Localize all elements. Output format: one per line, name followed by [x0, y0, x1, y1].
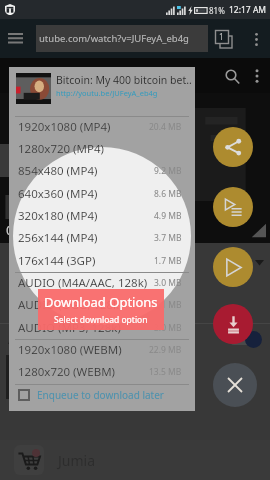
button[interactable]: Close	[213, 363, 257, 407]
button[interactable]: 1920x1080 (MP4)	[9, 116, 195, 138]
staticText: Download Options	[44, 293, 158, 311]
staticText: 854x480 (MP4)	[18, 163, 98, 179]
staticText: AUDIO (M4A/AAC, 128k)	[18, 275, 148, 291]
button[interactable]: utube.com/watch?v=JUFeyA_eb4g	[36, 25, 208, 52]
button[interactable]: More	[247, 66, 267, 86]
button[interactable]: 176x144 (3GP)	[9, 250, 195, 272]
button[interactable]: 1920x1080 (WEBM)	[9, 339, 195, 361]
button[interactable]: Search	[220, 64, 244, 88]
button[interactable]: 854x480 (MP4)	[9, 160, 195, 182]
button[interactable]: 320x180 (MP4)	[9, 205, 195, 227]
button[interactable]: 1280x720 (MP4)	[9, 138, 195, 160]
button[interactable]: AUDIO (OGG, 128k)	[9, 294, 195, 316]
staticText: 3.0 MB	[154, 322, 182, 334]
staticText: http://youtu.be/JUFeyA_eb4g	[56, 88, 158, 98]
staticText: AUDIO (OGG, 128k)	[18, 297, 123, 313]
staticText: 81%	[209, 5, 225, 16]
staticText: 0:00	[6, 221, 32, 239]
staticText: 4.9 MB	[154, 210, 182, 222]
button[interactable]: Tabs	[214, 30, 238, 50]
button[interactable]: 640x360 (MP4)	[9, 183, 195, 205]
staticText: CNBC	[88, 373, 113, 385]
staticText: 2:54	[64, 386, 80, 397]
staticText: 138,139 views	[88, 388, 147, 400]
button[interactable]: Jumia	[0, 440, 270, 480]
staticText: 3.7 MB	[154, 232, 182, 244]
button[interactable]: 1280x720 (WEBM)	[9, 361, 195, 383]
button[interactable]: Play	[213, 247, 253, 287]
staticText: Enqueue to download later	[37, 388, 164, 402]
staticText: 320x180 (MP4)	[18, 208, 98, 224]
staticText: 9.2 MB	[154, 165, 182, 177]
button[interactable]: More options	[247, 27, 265, 51]
staticText: Select download option	[54, 314, 148, 326]
staticText: Jumia	[58, 451, 96, 470]
staticText: 8.6 MB	[154, 188, 182, 200]
staticText: 1	[219, 31, 224, 42]
staticText: 2.1 MB	[154, 299, 182, 311]
button[interactable]: AUDIO (MP3, 128k)	[9, 317, 195, 339]
staticText: 640x360 (MP4)	[18, 186, 98, 202]
staticText: 22.9 MB	[149, 344, 182, 356]
staticText: 1920x1080 (WEBM)	[18, 342, 122, 358]
staticText: 1920x1080 (MP4)	[18, 119, 111, 135]
staticText: utube.com/watch?v=JUFeyA_eb4g	[39, 32, 189, 45]
staticText: 12:17 AM	[229, 4, 267, 16]
staticText: 1.7 MB	[154, 255, 182, 267]
staticText: 1280x720 (MP4)	[18, 141, 104, 157]
button[interactable]: Download	[213, 304, 253, 344]
staticText: Autoplay	[8, 332, 54, 347]
staticText: 1280x720 (WEBM)	[18, 364, 116, 380]
button[interactable]: Share	[213, 127, 253, 167]
button[interactable]: Menu	[2, 25, 28, 51]
staticText: 20.4 MB	[149, 121, 182, 133]
button[interactable]: AUDIO (M4A/AAC, 128k)	[9, 272, 195, 294]
staticText: 256x144 (MP4)	[18, 230, 98, 246]
staticText: 13.5 MB	[149, 366, 182, 378]
button[interactable]: 256x144 (MP4)	[9, 227, 195, 249]
button[interactable]: Play queue	[213, 187, 253, 227]
staticText: 3.0 MB	[154, 277, 182, 289]
button[interactable]: Enqueue to download later	[9, 384, 195, 406]
staticText: 176x144 (3GP)	[18, 253, 96, 269]
staticText: Bitcoin: My 400 bitcoin bet, but...	[8, 254, 192, 270]
staticText: Bitcoin: My 400 bitcoin bet..	[56, 73, 192, 87]
staticText: 138,139 views	[8, 275, 74, 289]
staticText: AUDIO (MP3, 128k)	[18, 320, 121, 336]
staticText: Gold vs Bitcoin | Ma	[88, 355, 183, 369]
